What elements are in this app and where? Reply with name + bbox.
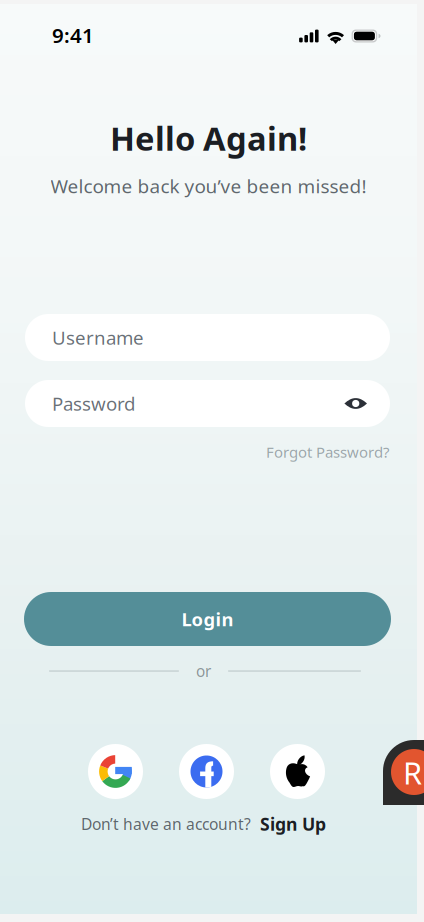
button[interactable]: Sign in with Facebook — [179, 744, 234, 799]
staticText: Password — [52, 391, 135, 416]
staticText: R — [403, 752, 422, 793]
staticText: Welcome back you’ve been missed! — [50, 173, 366, 199]
staticText: Sign Up — [260, 812, 326, 836]
button[interactable]: Sign in with Apple — [270, 744, 325, 799]
staticText: Login — [181, 606, 233, 632]
staticText: 9:41 — [52, 21, 94, 49]
button[interactable]: Sign in with Google — [88, 744, 143, 799]
button[interactable]: Forgot Password? — [249, 441, 389, 463]
staticText: Hello Again! — [110, 116, 307, 160]
staticText: Username — [52, 325, 144, 350]
button[interactable]: Sign Up — [260, 812, 326, 836]
staticText: or — [196, 661, 211, 681]
staticText: Forgot Password? — [266, 442, 389, 462]
button[interactable]: Username — [25, 314, 390, 361]
button[interactable]: Login — [24, 592, 391, 646]
button[interactable]: Password — [25, 380, 390, 427]
staticText: Don’t have an account? — [81, 813, 251, 835]
